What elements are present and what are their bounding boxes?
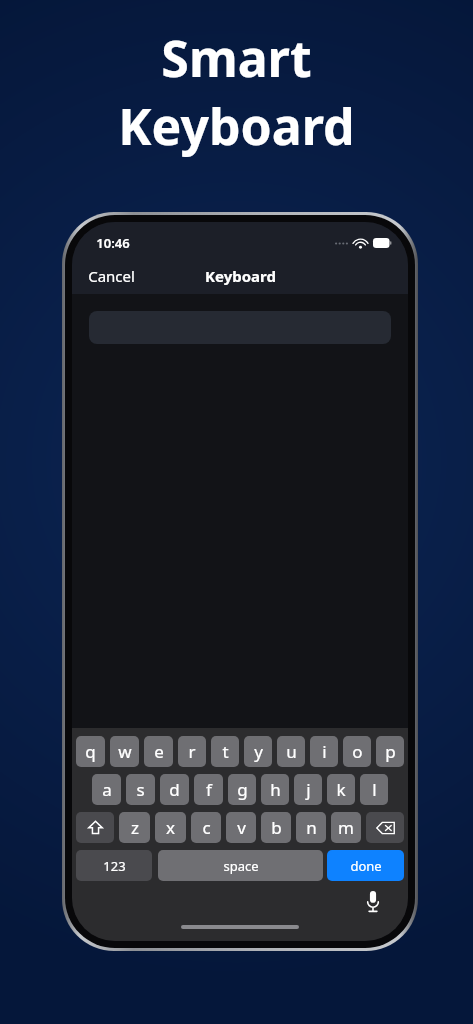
staticText: a	[102, 778, 112, 801]
button[interactable]: s	[126, 774, 155, 805]
staticText: z	[131, 816, 139, 839]
staticText: v	[237, 816, 246, 839]
staticText: u	[286, 740, 297, 763]
staticText: d	[169, 778, 180, 801]
staticText: m	[338, 816, 354, 839]
staticText: r	[188, 740, 196, 763]
staticText: f	[206, 778, 212, 801]
staticText: 123	[103, 857, 126, 875]
button[interactable]: f	[194, 774, 223, 805]
staticText: x	[166, 816, 175, 839]
button[interactable]: x	[155, 812, 186, 843]
button[interactable]: Dictate	[358, 886, 388, 916]
button[interactable]: q	[76, 736, 105, 767]
staticText: Smart	[161, 24, 312, 92]
staticText: Keyboard	[205, 266, 276, 286]
staticText: j	[306, 778, 311, 801]
button[interactable]: o	[343, 736, 371, 767]
button[interactable]: k	[327, 774, 355, 805]
button[interactable]: Backspace	[366, 812, 404, 843]
staticText: g	[237, 778, 248, 801]
staticText: w	[118, 740, 132, 763]
staticText: i	[322, 740, 327, 763]
button[interactable]: y	[244, 736, 272, 767]
button[interactable]: Cancel	[72, 258, 151, 294]
button[interactable]: r	[178, 736, 206, 767]
staticText: Cancel	[88, 266, 135, 286]
button[interactable]: l	[360, 774, 388, 805]
staticText: done	[350, 857, 382, 875]
staticText: space	[223, 857, 259, 875]
button[interactable]: v	[226, 812, 256, 843]
staticText: c	[202, 816, 211, 839]
staticText: b	[271, 816, 282, 839]
button[interactable]: t	[211, 736, 239, 767]
button[interactable]: a	[92, 774, 121, 805]
button[interactable]: Shift	[76, 812, 114, 843]
staticText: q	[85, 740, 96, 763]
button[interactable]: n	[296, 812, 326, 843]
staticText: Keyboard	[118, 92, 355, 160]
staticText: e	[154, 740, 164, 763]
button[interactable]: e	[144, 736, 173, 767]
staticText: y	[254, 740, 263, 763]
button[interactable]: b	[261, 812, 291, 843]
button[interactable]: w	[110, 736, 139, 767]
button[interactable]: g	[228, 774, 256, 805]
staticText: h	[270, 778, 281, 801]
staticText: 10:46	[96, 234, 130, 252]
button[interactable]: j	[294, 774, 322, 805]
staticText: k	[336, 778, 346, 801]
button[interactable]: d	[160, 774, 189, 805]
staticText: p	[385, 740, 396, 763]
staticText: t	[222, 740, 229, 763]
staticText: n	[306, 816, 317, 839]
button[interactable]: c	[191, 812, 221, 843]
button[interactable]: 123	[76, 850, 152, 881]
button[interactable]: p	[376, 736, 404, 767]
button[interactable]: m	[331, 812, 361, 843]
button[interactable]: space	[158, 850, 323, 881]
staticText: l	[372, 778, 377, 801]
button[interactable]: z	[119, 812, 150, 843]
button[interactable]: done	[327, 850, 404, 881]
button[interactable]: i	[310, 736, 338, 767]
staticText: o	[352, 740, 363, 763]
button[interactable]: u	[277, 736, 305, 767]
staticText: s	[136, 778, 145, 801]
button[interactable]: h	[261, 774, 289, 805]
